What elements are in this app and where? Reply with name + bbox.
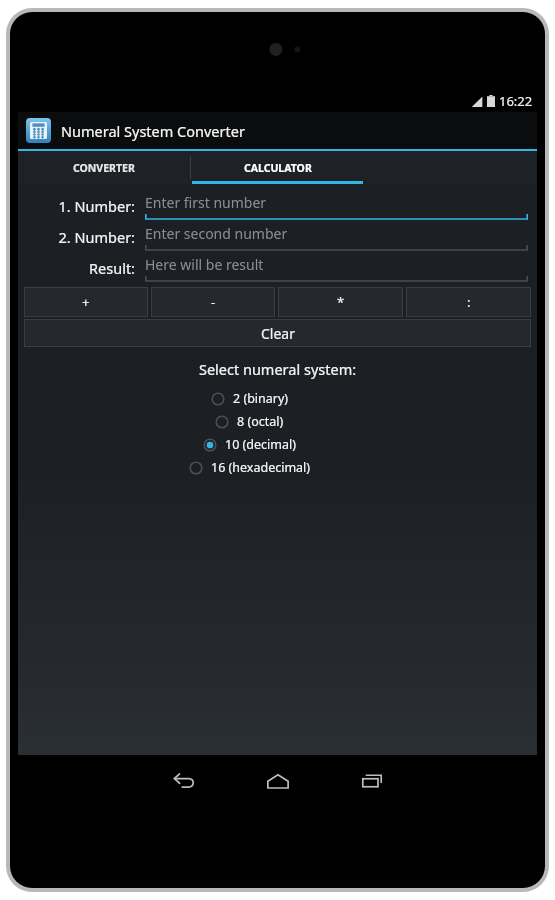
staticText: 16:22 (499, 92, 533, 110)
button[interactable]: Enter second number (145, 221, 528, 252)
staticText: Result: (23, 258, 135, 278)
button[interactable]: 16 (hexadecimal) (189, 459, 311, 476)
staticText: Select numeral system: (18, 359, 537, 379)
staticText: - (211, 293, 216, 311)
staticText: 10 (decimal) (225, 436, 296, 453)
button[interactable]: 8 (octal) (215, 413, 284, 430)
button[interactable]: Enter first number (145, 190, 528, 221)
button[interactable]: * (278, 287, 403, 317)
button[interactable]: : (406, 287, 531, 317)
staticText: Clear (261, 324, 295, 343)
staticText: 2. Number: (23, 227, 135, 247)
staticText: CONVERTER (73, 161, 135, 175)
staticText: * (337, 293, 345, 311)
button[interactable]: 10 (decimal) (203, 436, 296, 453)
button[interactable]: + (24, 287, 148, 317)
staticText: : (467, 293, 471, 311)
button[interactable]: - (151, 287, 275, 317)
button[interactable]: Recent apps (325, 765, 419, 797)
button[interactable]: Here will be result (145, 252, 528, 283)
button[interactable]: CONVERTER (18, 151, 190, 184)
button[interactable]: Home (231, 765, 325, 797)
staticText: Numeral System Converter (61, 121, 245, 141)
button[interactable]: CALCULATOR (191, 151, 364, 184)
staticText: 2 (binary) (233, 390, 289, 407)
button[interactable]: 2 (binary) (211, 390, 289, 407)
staticText: 1. Number: (23, 196, 135, 216)
staticText: Enter second number (145, 224, 288, 243)
button[interactable]: Back (137, 765, 231, 797)
staticText: CALCULATOR (244, 161, 312, 175)
staticText: Here will be result (145, 255, 264, 274)
staticText: 16 (hexadecimal) (211, 459, 311, 476)
button[interactable]: Clear (24, 319, 531, 347)
staticText: 8 (octal) (237, 413, 284, 430)
staticText: + (82, 293, 90, 311)
staticText: Enter first number (145, 193, 267, 212)
